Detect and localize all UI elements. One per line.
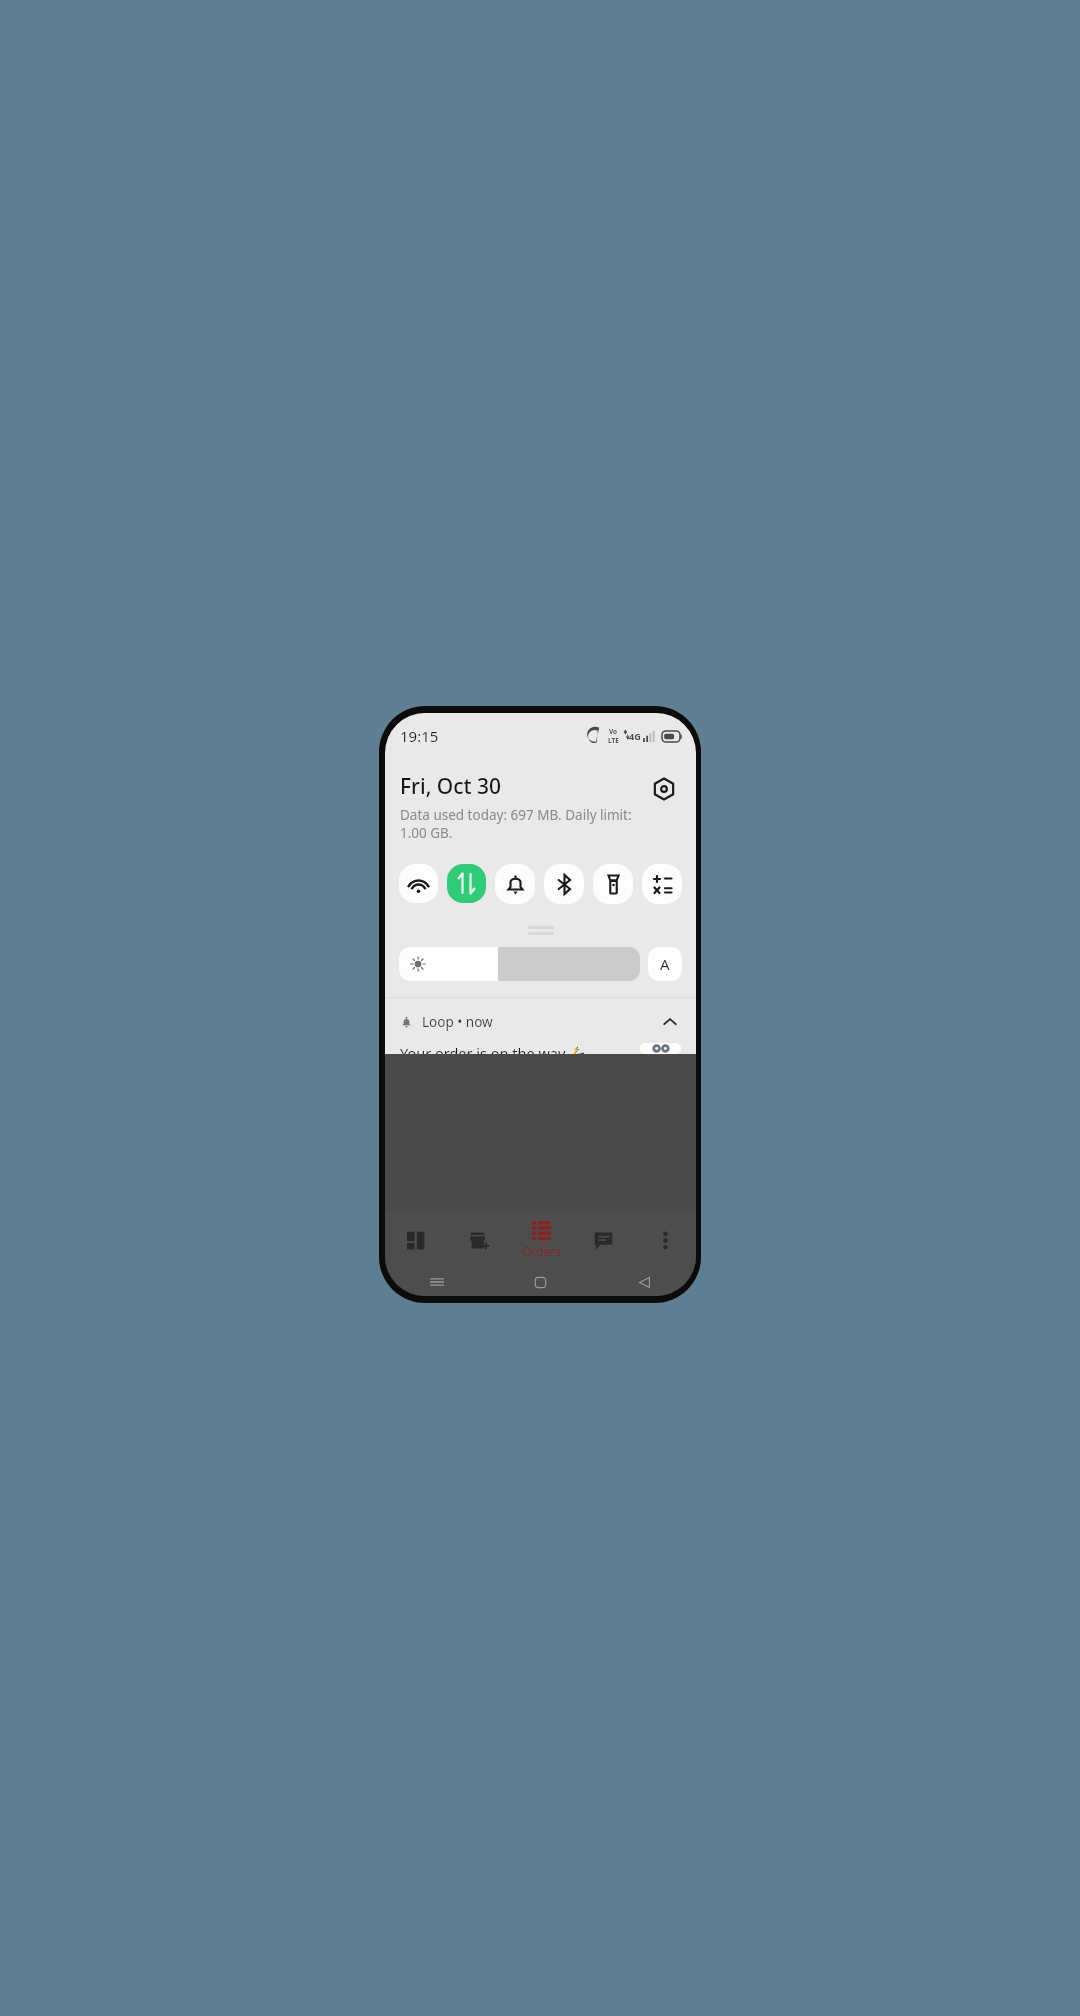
button[interactable]: Bluetooth	[544, 864, 584, 904]
button[interactable]: Add store	[448, 1212, 510, 1268]
button[interactable]: More options	[634, 1212, 696, 1268]
button[interactable]: Wi-Fi	[399, 864, 438, 903]
staticText: A	[660, 954, 670, 974]
staticText: Loop • now	[422, 1013, 493, 1031]
staticText: 19:15	[400, 726, 439, 746]
button[interactable]: Home	[488, 1268, 592, 1296]
button[interactable]: Auto brightness	[648, 947, 682, 981]
button[interactable]: Brightness	[399, 947, 640, 981]
staticText: LTE	[608, 736, 619, 745]
staticText: Data used today: 697 MB. Daily limit: 1.…	[400, 806, 647, 842]
button[interactable]: Messages	[572, 1212, 634, 1268]
button[interactable]: Dashboard	[385, 1212, 448, 1268]
button[interactable]: Collapse	[659, 1011, 681, 1033]
button[interactable]: Do not disturb	[495, 864, 535, 904]
button[interactable]: Mobile data	[447, 864, 486, 903]
button[interactable]: Back	[592, 1268, 696, 1296]
button[interactable]: Orders	[510, 1212, 572, 1268]
staticText: 4G	[629, 730, 641, 742]
staticText: Your order is on the way 🛵 Order ID 2801…	[400, 1043, 630, 1054]
button[interactable]: Settings	[647, 772, 681, 806]
staticText: Vo	[609, 727, 618, 736]
button[interactable]: Calculator	[642, 864, 682, 904]
button[interactable]: Flashlight	[593, 864, 633, 904]
button[interactable]: Loop • now	[385, 998, 696, 1054]
button[interactable]: Recents	[385, 1268, 488, 1296]
staticText: Orders	[522, 1243, 561, 1259]
staticText: Fri, Oct 30	[400, 772, 502, 801]
